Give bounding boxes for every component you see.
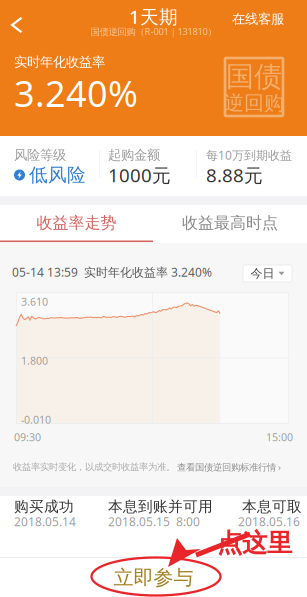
button[interactable]: 今日 [243, 265, 292, 282]
staticText: 05-14 13:59 实时年化收益率 3.240% [12, 264, 212, 280]
staticText: 在线客服 [232, 11, 284, 27]
staticText: 风险等级 [14, 147, 66, 163]
staticText: 收益率实时变化，以成交时收益率为准。 [13, 461, 175, 473]
staticText: 国债逆回购（R-001｜131810） [90, 25, 216, 38]
staticText: 收益率走势 [36, 213, 116, 233]
staticText: 购买成功 [14, 497, 74, 515]
staticText: -0.010 [21, 412, 51, 427]
staticText: 15:00 [266, 430, 293, 444]
staticText: 09:30 [14, 430, 41, 444]
staticText: 本息到账并可用 [108, 497, 213, 515]
staticText: 1天期 [129, 4, 178, 29]
staticText: 逆回购 [224, 91, 284, 115]
staticText: 实时年化收益率 [14, 54, 105, 70]
staticText: 3.240% [14, 69, 138, 117]
button[interactable]: 立即参与 [0, 558, 307, 597]
staticText: 每10万到期收益 [206, 147, 292, 163]
staticText: 低风险 [29, 163, 86, 186]
staticText: 收益最高时点 [182, 213, 278, 233]
staticText: 国债 [226, 59, 282, 94]
staticText: 8.88元 [206, 163, 263, 187]
staticText: 起购金额 [108, 147, 160, 163]
staticText: 2018.05.16 [238, 513, 300, 529]
button[interactable]: 返回 [0, 11, 34, 39]
button[interactable]: 收益率走势 [0, 205, 153, 241]
button[interactable]: 在线客服 [232, 9, 298, 29]
button[interactable]: 收益最高时点 [153, 205, 307, 241]
staticText: 立即参与 [113, 565, 193, 590]
staticText: 点这里 [217, 527, 292, 558]
staticText: 1.800 [21, 353, 48, 368]
button[interactable]: 查看国债逆回购标准行情 › [177, 461, 281, 473]
staticText: 1000元 [108, 163, 171, 187]
staticText: 今日 [250, 266, 274, 281]
staticText: 2018.05.15 8:00 [108, 513, 200, 529]
staticText: 3.610 [21, 294, 48, 309]
staticText: 本息可取 [242, 497, 302, 515]
staticText: 查看国债逆回购标准行情 › [177, 461, 281, 473]
staticText: 2018.05.14 [14, 513, 76, 529]
